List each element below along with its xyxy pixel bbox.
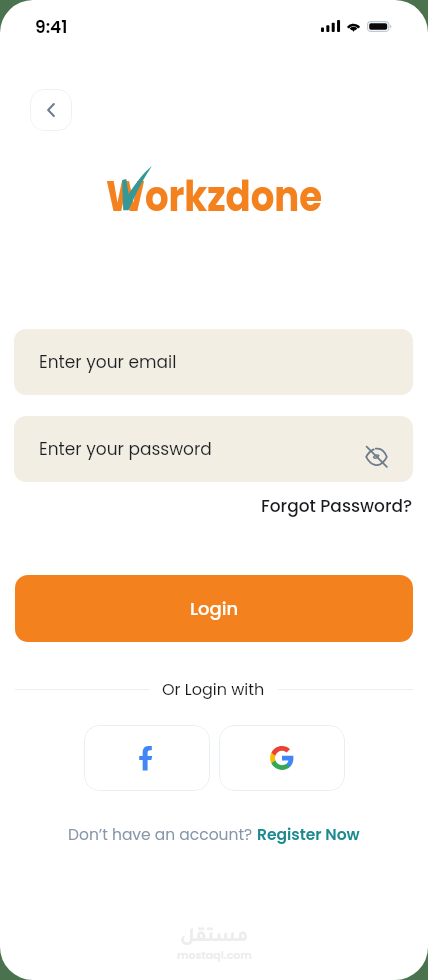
- button[interactable]: Register Now: [257, 824, 360, 846]
- button[interactable]: Enter your email: [14, 329, 413, 395]
- button[interactable]: Forgot Password?: [257, 490, 417, 522]
- button[interactable]: Login: [15, 575, 413, 642]
- staticText: Forgot Password?: [261, 494, 413, 518]
- button[interactable]: Enter your password: [14, 416, 413, 482]
- staticText: Don’t have an account?: [68, 824, 257, 846]
- button[interactable]: Sign in with Google: [219, 725, 345, 791]
- button[interactable]: Back: [30, 89, 72, 131]
- staticText: Enter your email: [39, 350, 177, 374]
- staticText: mostaql.com: [177, 947, 252, 962]
- staticText: Or Login with: [162, 678, 265, 700]
- staticText: مستقل: [180, 928, 249, 948]
- staticText: 9:41: [35, 15, 68, 39]
- staticText: Register Now: [257, 824, 360, 846]
- button[interactable]: Show password: [361, 441, 391, 471]
- staticText: Enter your password: [39, 437, 212, 461]
- button[interactable]: Sign in with Facebook: [84, 725, 210, 791]
- staticText: Workzdone: [106, 167, 322, 223]
- staticText: Login: [190, 596, 239, 621]
